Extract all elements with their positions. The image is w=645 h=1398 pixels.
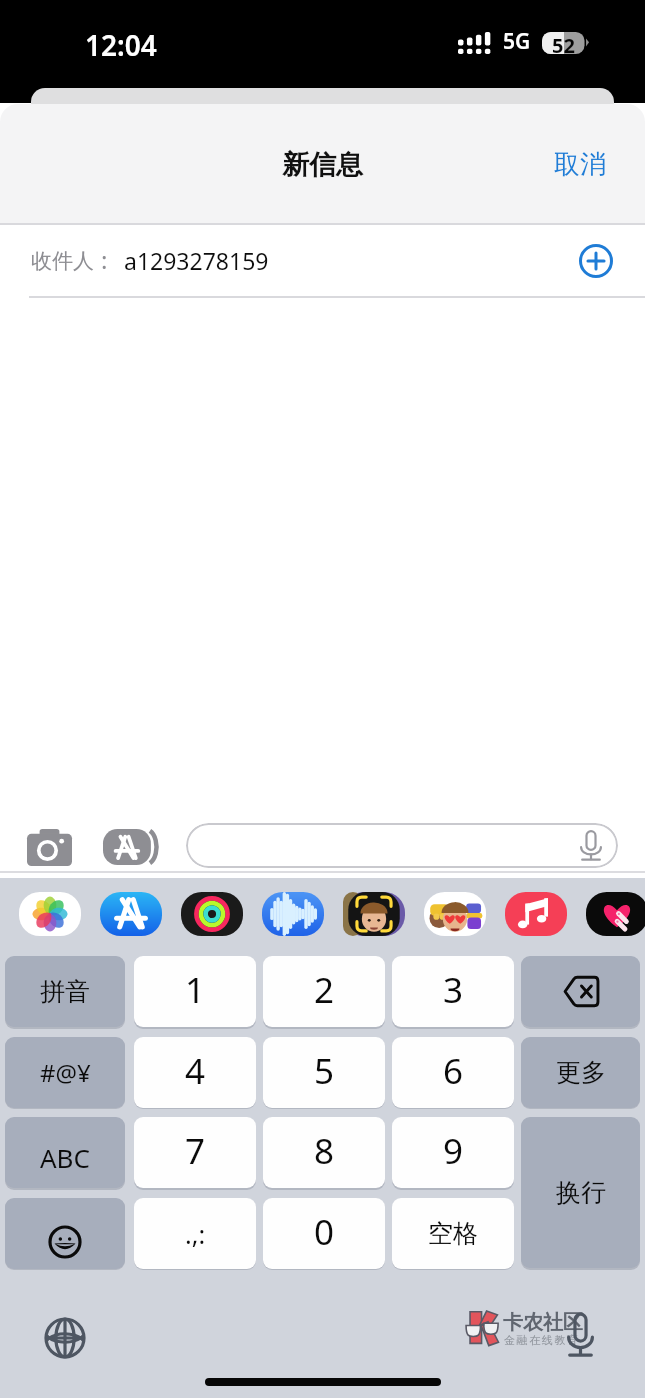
button[interactable]: Change keyboard <box>40 1313 89 1362</box>
staticText: 4 <box>185 1047 206 1095</box>
staticText: 0 <box>314 1208 335 1256</box>
button[interactable]: Music <box>505 892 567 936</box>
button[interactable]: key 拼音 <box>5 956 125 1027</box>
button[interactable]: 取消 <box>534 136 645 193</box>
staticText: 取消 <box>554 148 606 181</box>
button[interactable]: Photos <box>19 892 81 936</box>
staticText: 8 <box>314 1127 335 1175</box>
button[interactable]: Health <box>586 892 645 936</box>
staticText: 7 <box>185 1127 206 1175</box>
button[interactable]: key .,: <box>134 1198 256 1269</box>
button[interactable]: 更多 <box>521 1037 640 1108</box>
staticText: 空格 <box>428 1218 478 1249</box>
button[interactable]: key 3 <box>392 956 514 1027</box>
button[interactable]: key 5 <box>263 1037 385 1108</box>
staticText: .,: <box>185 1217 206 1251</box>
button[interactable]: Camera <box>27 829 72 866</box>
button[interactable]: 换行 <box>521 1117 640 1268</box>
button[interactable]: App Store <box>100 892 162 936</box>
button[interactable]: key 7 <box>134 1117 256 1188</box>
staticText: 收件人 <box>31 248 94 274</box>
button[interactable]: key 6 <box>392 1037 514 1108</box>
button[interactable]: Dictation <box>560 1308 602 1362</box>
staticText: 更多 <box>556 1057 606 1088</box>
staticText: 3 <box>443 966 464 1014</box>
staticText: 5 <box>314 1047 335 1095</box>
button[interactable]: Add contact <box>573 238 619 284</box>
staticText: 12:04 <box>85 26 157 64</box>
staticText: #@¥ <box>40 1056 91 1089</box>
button[interactable]: key <box>5 1198 125 1269</box>
button[interactable]: key 0 <box>263 1198 385 1269</box>
staticText: 2 <box>314 966 335 1014</box>
staticText: 1 <box>185 966 206 1014</box>
button[interactable]: Apps <box>103 829 159 865</box>
staticText: : <box>101 243 108 276</box>
staticText: 新信息 <box>282 148 363 182</box>
button[interactable]: Stickers <box>424 892 486 936</box>
button[interactable]: Fitness <box>181 892 243 936</box>
staticText: 金融在线教育 <box>504 1333 580 1347</box>
button[interactable] <box>186 823 618 868</box>
button[interactable]: Backspace <box>521 956 640 1027</box>
button[interactable]: key 9 <box>392 1117 514 1188</box>
staticText: 卡农社区 <box>503 1310 583 1335</box>
button[interactable]: key #@¥ <box>5 1037 125 1108</box>
button[interactable]: key 4 <box>134 1037 256 1108</box>
staticText: ABC <box>40 1140 90 1175</box>
staticText: 52 <box>552 32 575 54</box>
button[interactable]: key ABC <box>5 1117 125 1188</box>
staticText: 换行 <box>556 1177 606 1208</box>
button[interactable]: Memoji <box>343 892 405 936</box>
button[interactable]: key 8 <box>263 1117 385 1188</box>
button[interactable]: key 1 <box>134 956 256 1027</box>
staticText: a1293278159 <box>124 245 269 276</box>
staticText: 5G <box>503 27 531 56</box>
button[interactable]: Audio <box>262 892 324 936</box>
button[interactable]: key 2 <box>263 956 385 1027</box>
staticText: 9 <box>443 1127 464 1175</box>
staticText: 6 <box>443 1047 464 1095</box>
staticText: 拼音 <box>40 976 90 1007</box>
button[interactable]: key 空格 <box>392 1198 514 1269</box>
